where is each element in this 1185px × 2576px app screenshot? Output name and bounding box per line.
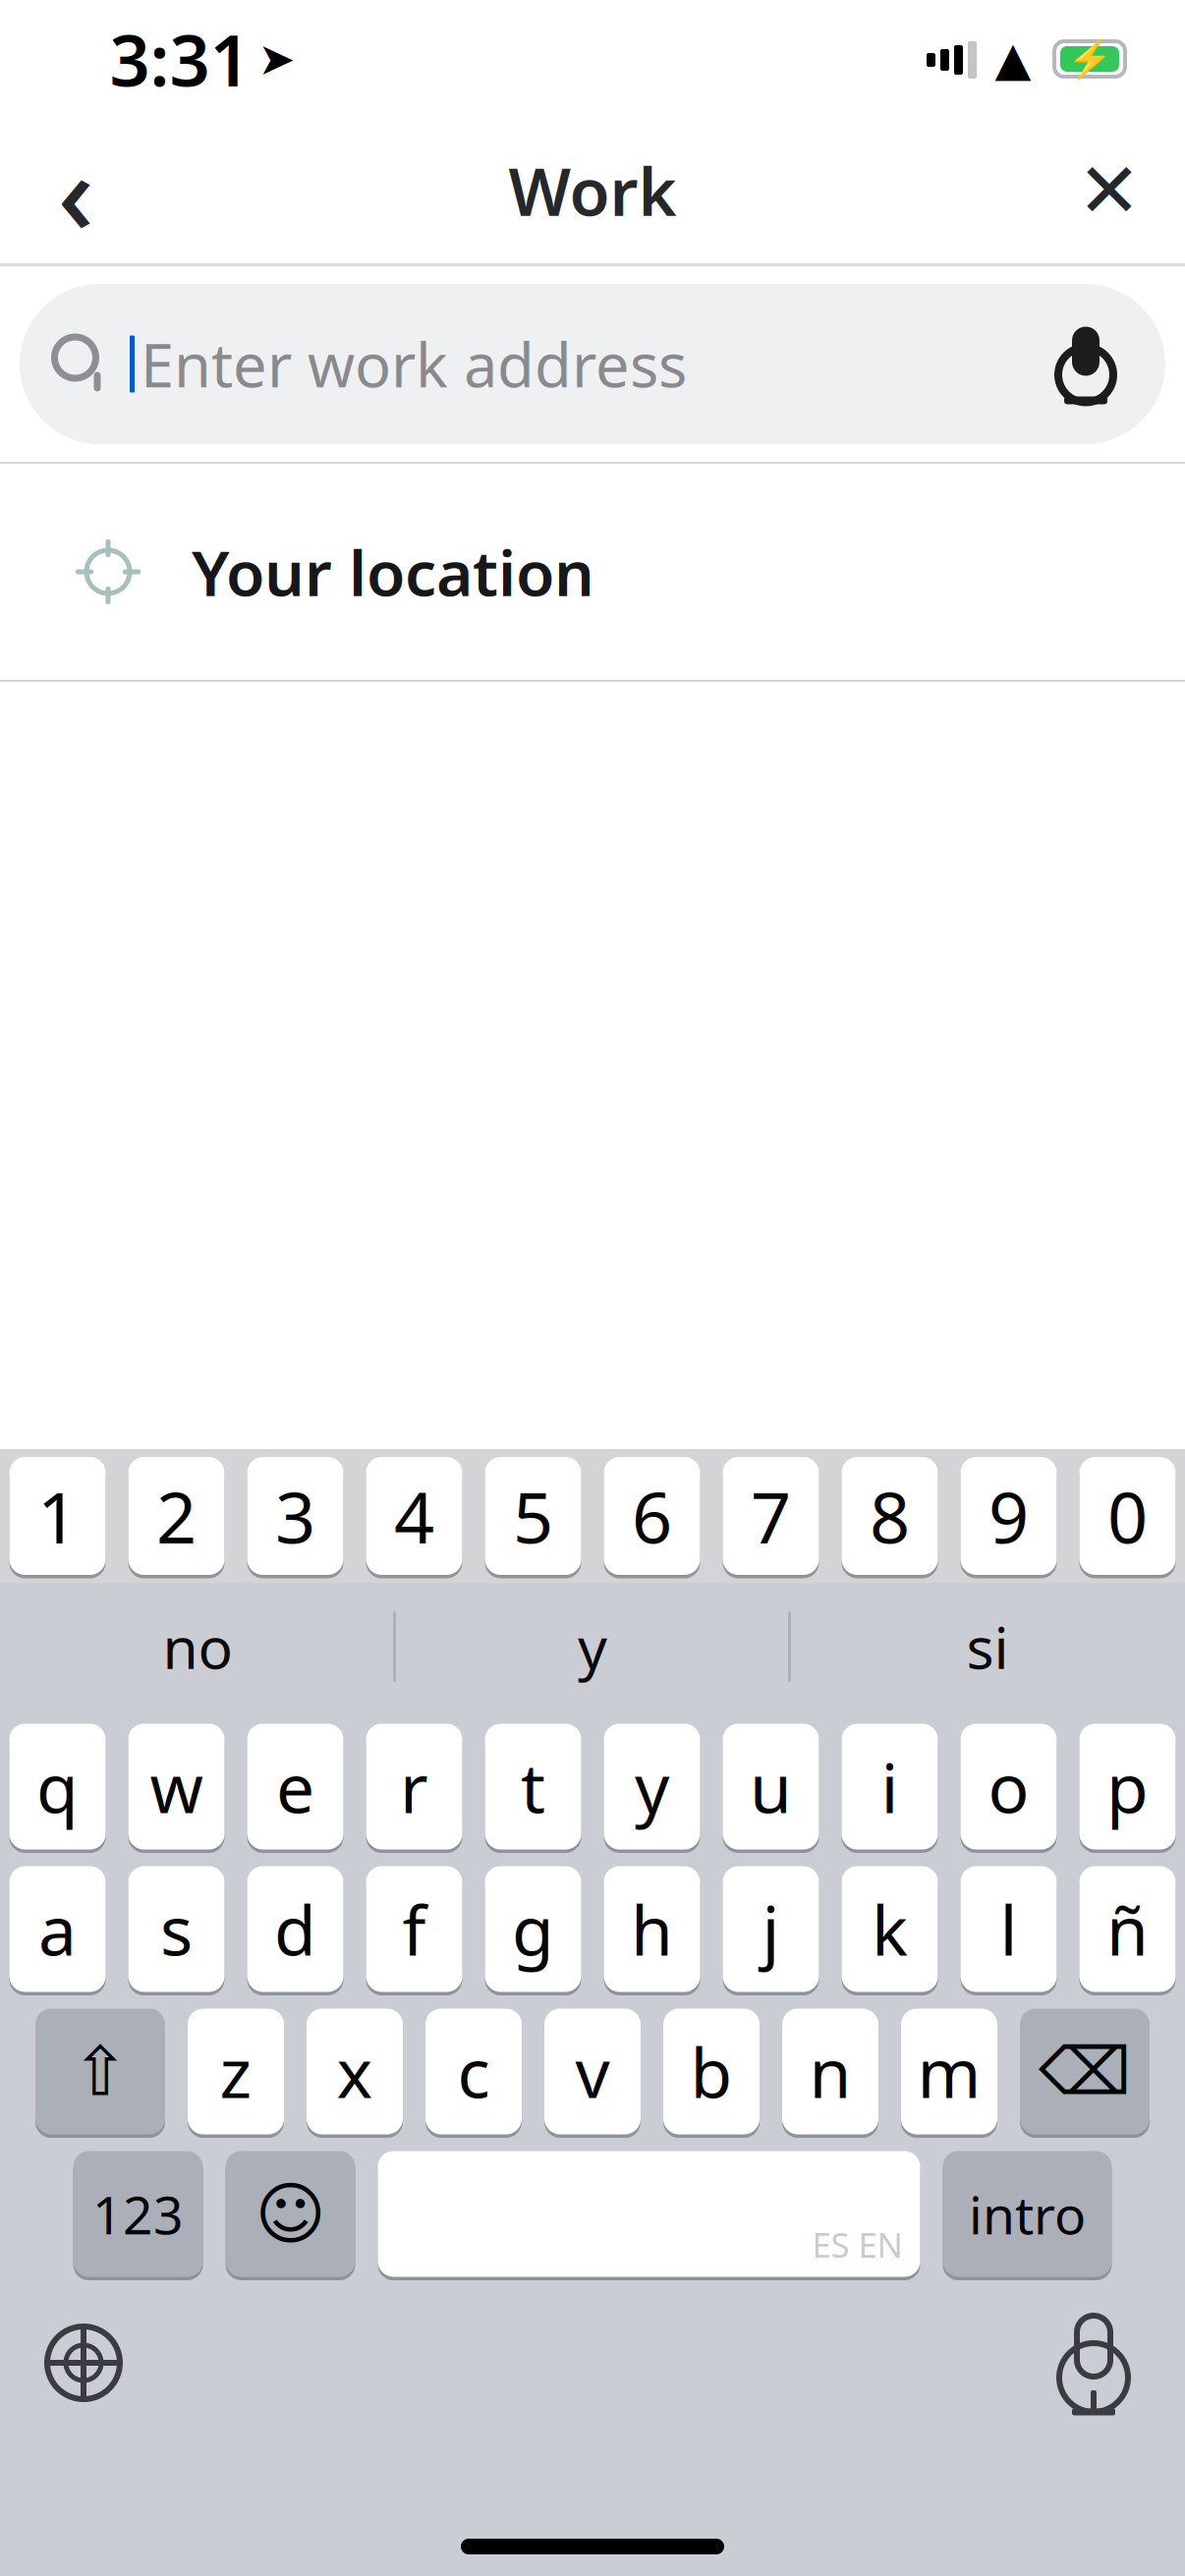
staticText: k	[872, 1884, 908, 1974]
button[interactable]: h	[604, 1863, 700, 1995]
button[interactable]: e	[247, 1720, 343, 1853]
button[interactable]: ES EN	[378, 2148, 920, 2280]
staticText: ➤	[258, 34, 295, 84]
staticText: 6	[632, 1469, 672, 1563]
button[interactable]: w	[128, 1720, 225, 1853]
staticText: a	[38, 1884, 77, 1974]
button[interactable]: 123	[73, 2148, 203, 2280]
staticText: ▲	[995, 32, 1031, 86]
button[interactable]: z	[188, 2005, 284, 2138]
button[interactable]: Your location	[0, 464, 1185, 680]
button[interactable]: 4	[366, 1454, 462, 1578]
staticText: si	[966, 1608, 1009, 1685]
button[interactable]: i	[842, 1720, 938, 1853]
button[interactable]: 6	[604, 1454, 700, 1578]
button[interactable]: ⌫	[1020, 2005, 1150, 2138]
button[interactable]: 9	[960, 1454, 1057, 1578]
button[interactable]: Enter work address	[20, 284, 1165, 444]
staticText: f	[402, 1884, 426, 1974]
button[interactable]: a	[9, 1863, 106, 1995]
button[interactable]: r	[366, 1720, 462, 1853]
button[interactable]: o	[960, 1720, 1057, 1853]
staticText: c	[457, 2026, 490, 2117]
staticText: 7	[751, 1469, 791, 1563]
staticText: 3:31	[110, 12, 250, 106]
button[interactable]: m	[901, 2005, 997, 2138]
staticText: y	[635, 1741, 669, 1832]
button[interactable]: Close	[1045, 137, 1173, 245]
staticText: 3	[275, 1469, 315, 1563]
staticText: x	[337, 2026, 373, 2117]
staticText: u	[750, 1741, 792, 1832]
staticText: 0	[1107, 1469, 1148, 1563]
button[interactable]: x	[307, 2005, 403, 2138]
button[interactable]: Dictation	[1040, 2304, 1148, 2422]
button[interactable]: 5	[485, 1454, 581, 1578]
button[interactable]: ☺	[226, 2148, 355, 2280]
button[interactable]: p	[1079, 1720, 1176, 1853]
staticText: ‹	[57, 116, 94, 265]
staticText: n	[809, 2026, 851, 2117]
staticText: b	[690, 2026, 733, 2117]
button[interactable]: s	[128, 1863, 225, 1995]
staticText: 123	[92, 2179, 184, 2249]
staticText: o	[988, 1741, 1029, 1832]
button[interactable]: ñ	[1079, 1863, 1176, 1995]
staticText: intro	[969, 2179, 1086, 2249]
button[interactable]: y	[604, 1720, 700, 1853]
staticText: ☺	[255, 2175, 326, 2253]
staticText: ES EN	[812, 2222, 903, 2267]
staticText: r	[400, 1741, 428, 1832]
button[interactable]: q	[9, 1720, 106, 1853]
staticText: ñ	[1106, 1884, 1149, 1974]
staticText: z	[220, 2026, 252, 2117]
button[interactable]: Back	[12, 137, 140, 245]
staticText: ⌫	[1039, 2034, 1131, 2109]
button[interactable]: 8	[842, 1454, 938, 1578]
staticText: Your location	[192, 530, 594, 614]
staticText: 9	[988, 1469, 1029, 1563]
button[interactable]: d	[247, 1863, 343, 1995]
staticText: w	[150, 1741, 203, 1832]
staticText: p	[1106, 1741, 1149, 1832]
button[interactable]: 2	[128, 1454, 225, 1578]
staticText: Work	[508, 147, 677, 234]
button[interactable]: t	[485, 1720, 581, 1853]
button[interactable]: 1	[9, 1454, 106, 1578]
staticText: 1	[37, 1469, 78, 1563]
staticText: e	[276, 1741, 314, 1832]
button[interactable]: u	[723, 1720, 819, 1853]
staticText: j	[762, 1884, 780, 1974]
staticText: v	[575, 2026, 610, 2117]
button[interactable]: k	[842, 1863, 938, 1995]
button[interactable]: Next keyboard	[29, 2309, 138, 2417]
button[interactable]: g	[485, 1863, 581, 1995]
staticText: ✕	[1077, 147, 1141, 234]
staticText: q	[36, 1741, 79, 1832]
button[interactable]: b	[663, 2005, 760, 2138]
staticText: s	[160, 1884, 193, 1974]
button[interactable]: intro	[943, 2148, 1112, 2280]
staticText: m	[917, 2026, 981, 2117]
staticText: i	[881, 1741, 899, 1832]
button[interactable]: n	[782, 2005, 878, 2138]
button[interactable]: c	[425, 2005, 522, 2138]
staticText: 8	[870, 1469, 910, 1563]
staticText: y	[578, 1608, 607, 1685]
button[interactable]: ⇧	[35, 2005, 165, 2138]
button[interactable]: j	[723, 1863, 819, 1995]
staticText: h	[631, 1884, 673, 1974]
button[interactable]: 0	[1079, 1454, 1176, 1578]
button[interactable]: 3	[247, 1454, 343, 1578]
staticText: g	[512, 1884, 554, 1974]
button[interactable]: l	[960, 1863, 1057, 1995]
staticText: ⇧	[72, 2033, 129, 2110]
staticText: d	[274, 1884, 316, 1974]
button[interactable]: 7	[723, 1454, 819, 1578]
staticText: 2	[156, 1469, 197, 1563]
button[interactable]: f	[366, 1863, 462, 1995]
staticText: 5	[513, 1469, 553, 1563]
staticText: l	[1000, 1884, 1017, 1974]
staticText: t	[521, 1741, 545, 1832]
button[interactable]: v	[544, 2005, 641, 2138]
